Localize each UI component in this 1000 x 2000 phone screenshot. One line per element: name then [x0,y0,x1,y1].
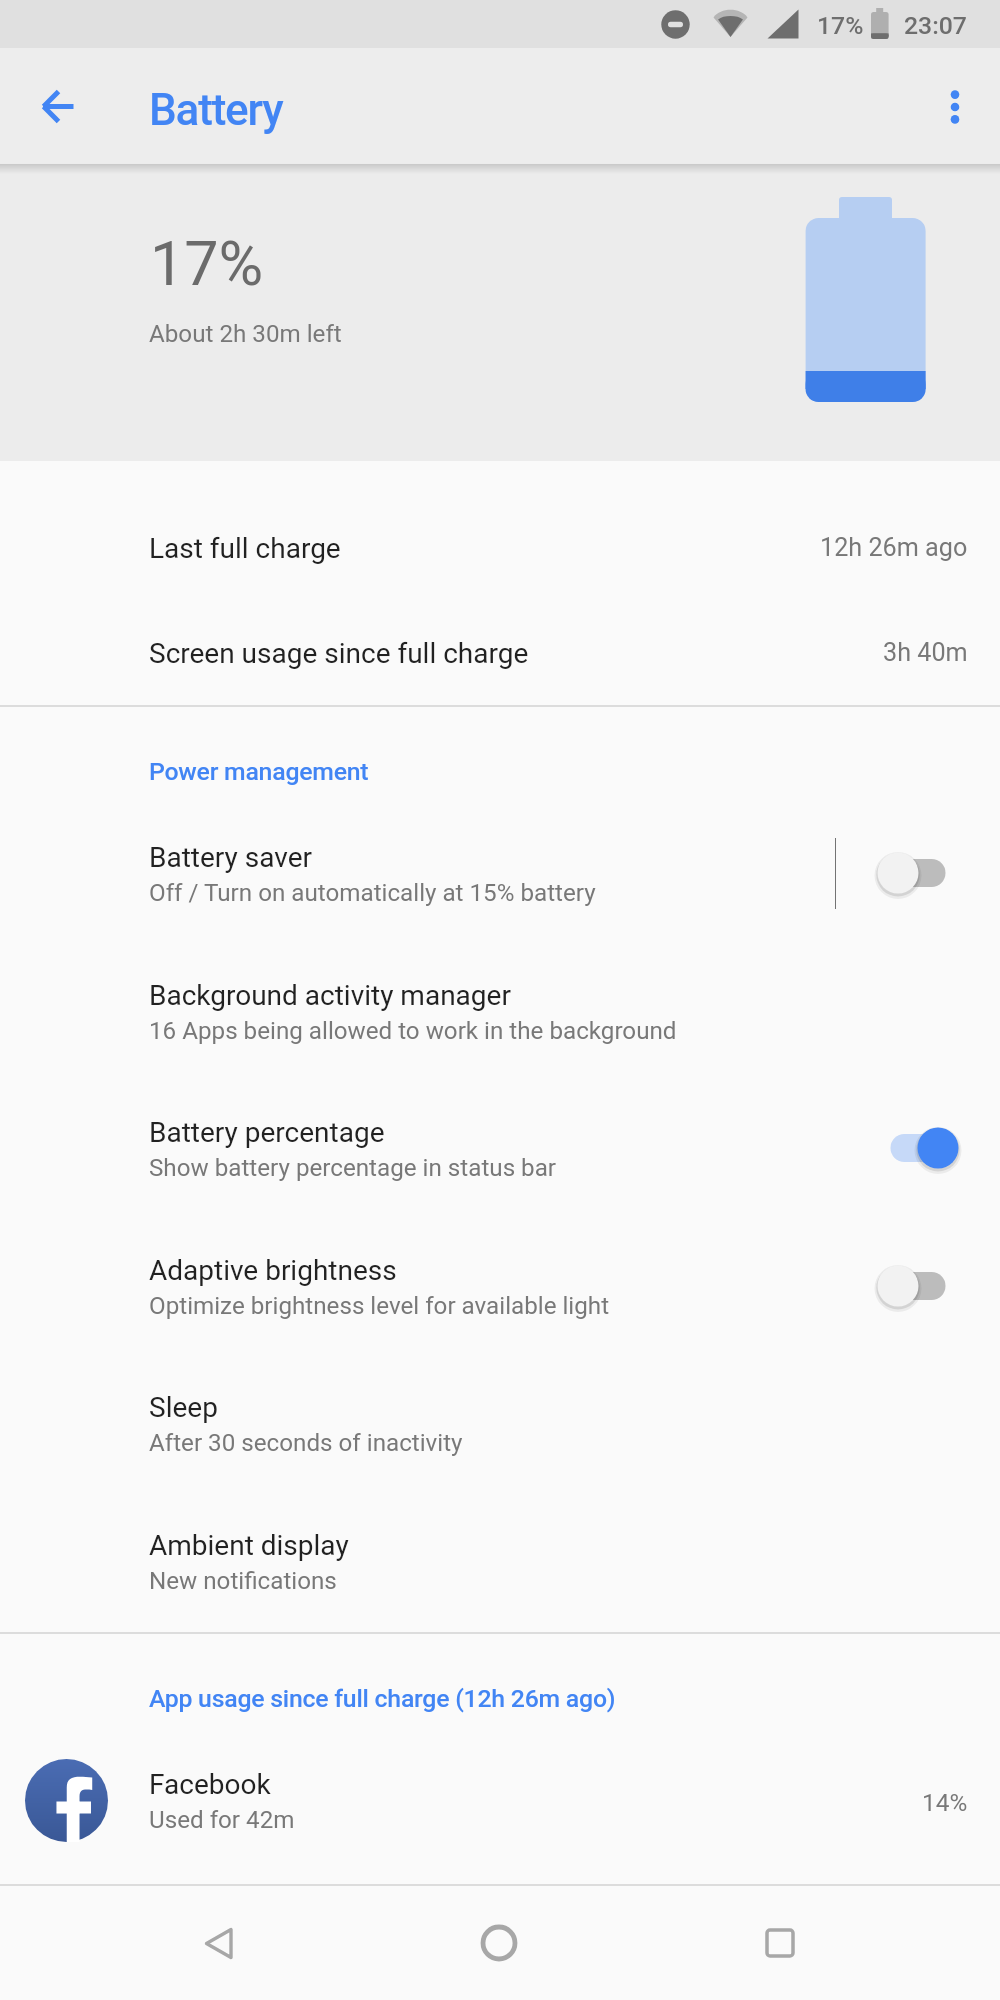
button[interactable]: Adaptive brightness [857,1231,967,1341]
button[interactable]: Battery percentage [0,1079,1000,1217]
staticText: Adaptive brightness [149,1254,397,1287]
staticText: Battery saver [149,841,312,874]
staticText: 17% [150,228,264,299]
staticText: Show battery percentage in status bar [149,1154,557,1182]
staticText: After 30 seconds of inactivity [149,1429,463,1457]
staticText: Battery [149,84,283,136]
button[interactable]: Recent apps [716,1886,844,2000]
staticText: App usage since full charge (12h 26m ago… [149,1684,616,1713]
staticText: Last full charge [149,532,341,565]
button[interactable]: Home [435,1886,563,2000]
button[interactable]: Sleep [0,1354,1000,1492]
staticText: Facebook [149,1768,271,1801]
staticText: Screen usage since full charge [149,637,529,670]
staticText: Optimize brightness level for available … [149,1292,610,1320]
staticText: Power management [149,757,369,786]
staticText: 16 Apps being allowed to work in the bac… [149,1017,677,1045]
staticText: Ambient display [149,1529,349,1562]
staticText: 14% [922,1788,968,1817]
button[interactable]: Battery saver [0,804,1000,942]
button[interactable]: Screen usage since full charge [0,601,1000,706]
staticText: 3h 40m [883,638,968,668]
button[interactable]: Adaptive brightness [0,1217,1000,1355]
staticText: Background activity manager [149,979,511,1012]
staticText: 12h 26m ago [820,533,968,563]
staticText: About 2h 30m left [149,320,342,348]
staticText: Used for 42m [149,1806,295,1834]
staticText: New notifications [149,1567,337,1595]
button[interactable]: Battery saver [857,818,967,928]
staticText: Off / Turn on automatically at 15% batte… [149,879,596,907]
button[interactable]: Facebook [0,1730,1000,1884]
staticText: Battery percentage [149,1116,385,1149]
button[interactable]: More options [917,69,993,145]
staticText: Sleep [149,1391,218,1424]
button[interactable]: Back [155,1886,283,2000]
button[interactable]: Last full charge [0,496,1000,601]
staticText: 23:07 [904,11,967,40]
button[interactable]: Navigate up [20,68,96,144]
staticText: 17% [817,11,864,40]
button[interactable]: Battery percentage [869,1093,979,1203]
button[interactable]: Background activity manager [0,942,1000,1080]
button[interactable]: Ambient display [0,1492,1000,1630]
